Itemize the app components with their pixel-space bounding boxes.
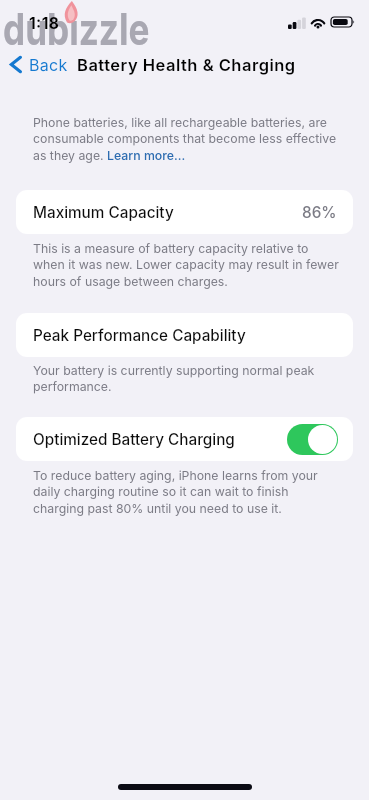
- button[interactable]: Back: [0, 52, 72, 77]
- staticText: dubizzle: [3, 2, 150, 56]
- staticText: 1:18: [29, 14, 60, 33]
- button[interactable]: Peak Performance Capability: [16, 313, 353, 357]
- staticText: Peak Performance Capability: [33, 326, 246, 345]
- staticText: To reduce battery aging, iPhone learns f…: [33, 468, 341, 516]
- staticText: This is a measure of battery capacity re…: [33, 241, 341, 289]
- button[interactable]: Optimized Battery Charging toggle: [287, 424, 338, 455]
- staticText: Optimized Battery Charging: [33, 430, 235, 449]
- staticText: Phone batteries, like all rechargeable b…: [33, 115, 341, 163]
- button[interactable]: Optimized Battery Charging: [16, 417, 353, 461]
- staticText: Your battery is currently supporting nor…: [33, 363, 341, 394]
- staticText: Battery Health & Charging: [77, 55, 296, 75]
- staticText: Back: [29, 55, 68, 74]
- button[interactable]: Maximum Capacity: [16, 190, 353, 234]
- staticText: Maximum Capacity: [33, 203, 174, 222]
- staticText: 86%: [302, 203, 337, 222]
